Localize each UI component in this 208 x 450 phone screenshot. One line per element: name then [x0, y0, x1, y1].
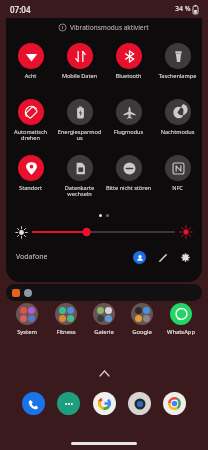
- staticText: Standort: [7, 184, 54, 192]
- button[interactable]: NFC: [153, 152, 202, 208]
- staticText: Energiesparmod us: [56, 128, 103, 142]
- button[interactable]: Standort: [6, 152, 55, 208]
- staticText: Flugmodus: [105, 128, 152, 136]
- staticText: Taschenlampe: [154, 72, 201, 80]
- button[interactable]: Datenkarte wechseln: [55, 152, 104, 208]
- button[interactable]: Fitness: [49, 303, 83, 336]
- button[interactable]: Google: [93, 392, 116, 415]
- staticText: Vodafone: [16, 252, 48, 262]
- staticText: Acht: [7, 72, 54, 80]
- button[interactable]: System: [10, 303, 44, 336]
- staticText: Google: [125, 328, 159, 336]
- button[interactable]: Chrome: [163, 392, 186, 415]
- staticText: Galerie: [87, 328, 121, 336]
- button[interactable]: Nutzer: [133, 251, 146, 264]
- button[interactable]: WhatsApp: [164, 303, 198, 336]
- button[interactable]: Nachtmodus: [153, 96, 202, 152]
- button[interactable]: Bluetooth: [104, 40, 153, 96]
- staticText: NFC: [154, 184, 201, 192]
- button[interactable]: Taschenlampe: [153, 40, 202, 96]
- button[interactable]: Automatisch drehen: [6, 96, 55, 152]
- button[interactable]: Galerie: [87, 303, 121, 336]
- staticText: Fitness: [49, 328, 83, 336]
- staticText: Mobile Daten: [56, 72, 103, 80]
- button[interactable]: [6, 284, 202, 301]
- staticText: System: [10, 328, 44, 336]
- staticText: Vibrationsmodus aktiviert: [70, 23, 149, 32]
- button[interactable]: Mobile Daten: [55, 40, 104, 96]
- staticText: Datenkarte wechseln: [56, 184, 103, 198]
- button[interactable]: Acht: [6, 40, 55, 96]
- button[interactable]: Einstellungen: [179, 251, 192, 264]
- button[interactable]: Bearbeiten: [156, 251, 169, 264]
- button[interactable]: Energiesparmod us: [55, 96, 104, 152]
- staticText: WhatsApp: [164, 328, 198, 336]
- staticText: 07:04: [10, 4, 31, 15]
- button[interactable]: Flugmodus: [104, 96, 153, 152]
- button[interactable]: Kamera: [128, 392, 151, 415]
- staticText: Bluetooth: [105, 72, 152, 80]
- staticText: Bitte nicht stören: [105, 184, 152, 192]
- staticText: Nachtmodus: [154, 128, 201, 136]
- staticText: 34 %: [175, 4, 191, 14]
- button[interactable]: Nachrichten: [57, 392, 80, 415]
- staticText: Automatisch drehen: [7, 128, 54, 142]
- button[interactable]: Google: [125, 303, 159, 336]
- button[interactable]: Bitte nicht stören: [104, 152, 153, 208]
- button[interactable]: Telefon: [22, 392, 45, 415]
